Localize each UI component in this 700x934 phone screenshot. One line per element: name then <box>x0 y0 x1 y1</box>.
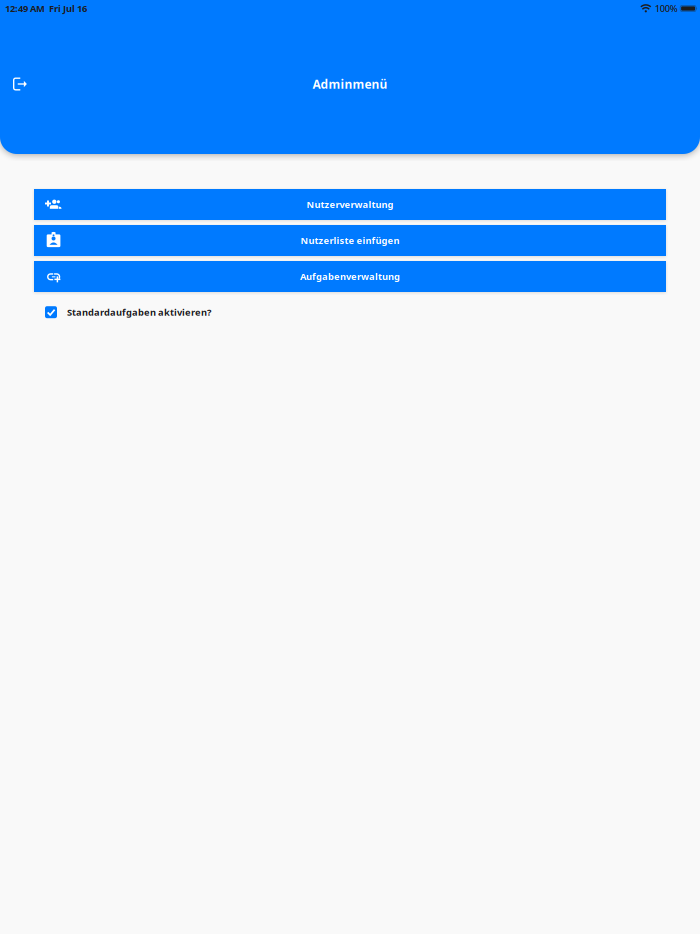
button[interactable]: Nutzerverwaltung <box>34 189 666 220</box>
staticText: Standardaufgaben aktivieren? <box>67 306 211 318</box>
staticText: Nutzerliste einfügen <box>300 234 399 247</box>
staticText: Nutzerverwaltung <box>306 198 393 211</box>
button[interactable]: Nutzerliste einfügen <box>34 225 666 256</box>
staticText: Aufgabenverwaltung <box>300 270 400 283</box>
button[interactable]: Aufgabenverwaltung <box>34 261 666 292</box>
button[interactable]: Standardaufgaben aktivieren? <box>0 292 700 328</box>
button[interactable]: Abmelden <box>1 65 39 103</box>
staticText: 100% <box>655 2 678 15</box>
staticText: Fri Jul 16 <box>49 2 87 15</box>
staticText: Adminmenü <box>312 76 387 92</box>
staticText: 12:49 AM <box>5 2 45 15</box>
